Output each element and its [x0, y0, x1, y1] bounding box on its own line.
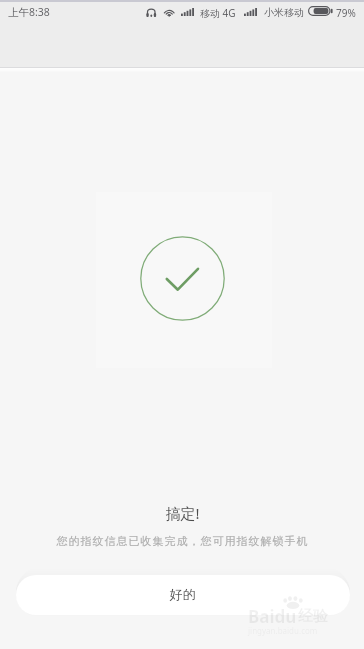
staticText: 好的	[169, 586, 196, 602]
staticText: 搞定!	[165, 503, 200, 523]
staticText: 小米移动	[264, 6, 304, 19]
staticText: Baidu	[248, 605, 297, 628]
staticText: 79%	[336, 6, 356, 20]
staticText: 经验	[298, 607, 328, 626]
staticText: 上午8:38	[8, 5, 50, 19]
staticText: 您的指纹信息已收集完成，您可用指纹解锁手机	[56, 534, 308, 548]
staticText: 移动 4G	[200, 6, 236, 20]
button[interactable]: 好的	[16, 575, 350, 615]
